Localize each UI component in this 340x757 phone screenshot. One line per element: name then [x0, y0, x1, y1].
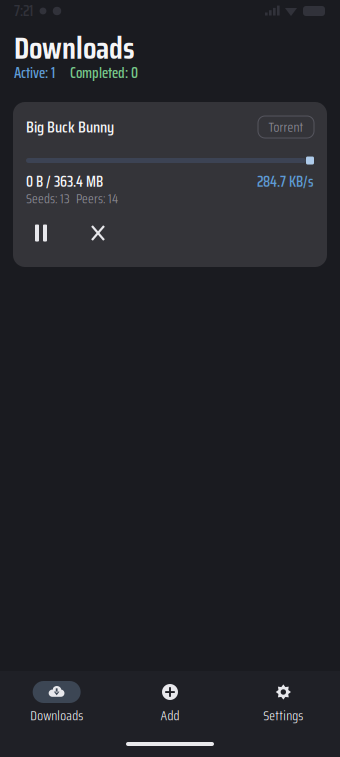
staticText: Downloads	[14, 24, 135, 72]
staticText: Completed: 0	[70, 61, 138, 85]
staticText: Big Buck Bunny	[26, 114, 114, 140]
staticText: Active: 1	[14, 61, 55, 85]
button[interactable]: Cancel download	[83, 222, 113, 244]
button[interactable]: Add	[113, 681, 227, 726]
staticText: Settings	[263, 705, 303, 726]
button[interactable]: Settings	[227, 681, 340, 726]
staticText: Torrent	[268, 116, 303, 137]
staticText: Add	[160, 705, 179, 726]
button[interactable]: Downloads	[0, 681, 113, 726]
button[interactable]: Torrent	[258, 116, 314, 138]
staticText: Seeds: 13 Peers: 14	[26, 188, 118, 209]
staticText: Downloads	[30, 705, 83, 726]
staticText: 284.7 KB/s	[257, 170, 314, 193]
staticText: 0 B / 363.4 MB	[26, 170, 103, 193]
staticText: 7:21	[14, 0, 33, 23]
button[interactable]: Pause download	[26, 222, 56, 244]
